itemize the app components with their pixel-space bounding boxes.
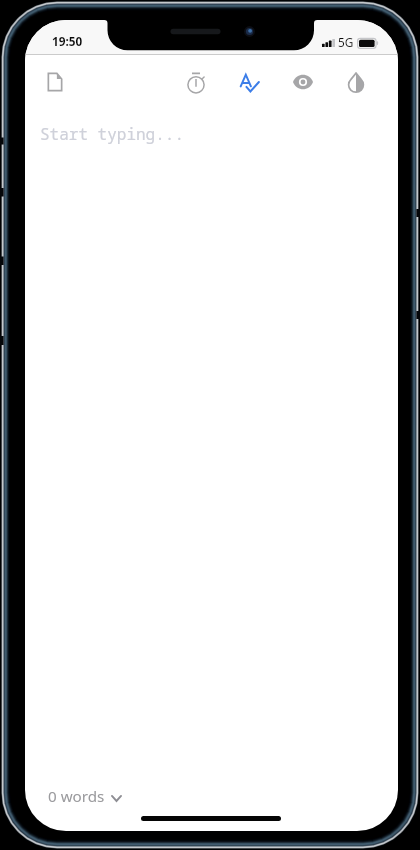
button[interactable]: Preview xyxy=(285,64,321,100)
button[interactable]: Documents xyxy=(37,64,73,100)
button[interactable]: Spellcheck xyxy=(231,66,267,102)
staticText: Start typing... xyxy=(40,123,185,145)
button[interactable]: Timer xyxy=(178,66,214,102)
staticText: 5G xyxy=(338,34,354,50)
staticText: 0 words xyxy=(48,786,105,807)
button[interactable]: 0 words xyxy=(48,784,122,808)
staticText: 19:50 xyxy=(52,33,83,49)
button[interactable]: Theme xyxy=(338,65,374,101)
